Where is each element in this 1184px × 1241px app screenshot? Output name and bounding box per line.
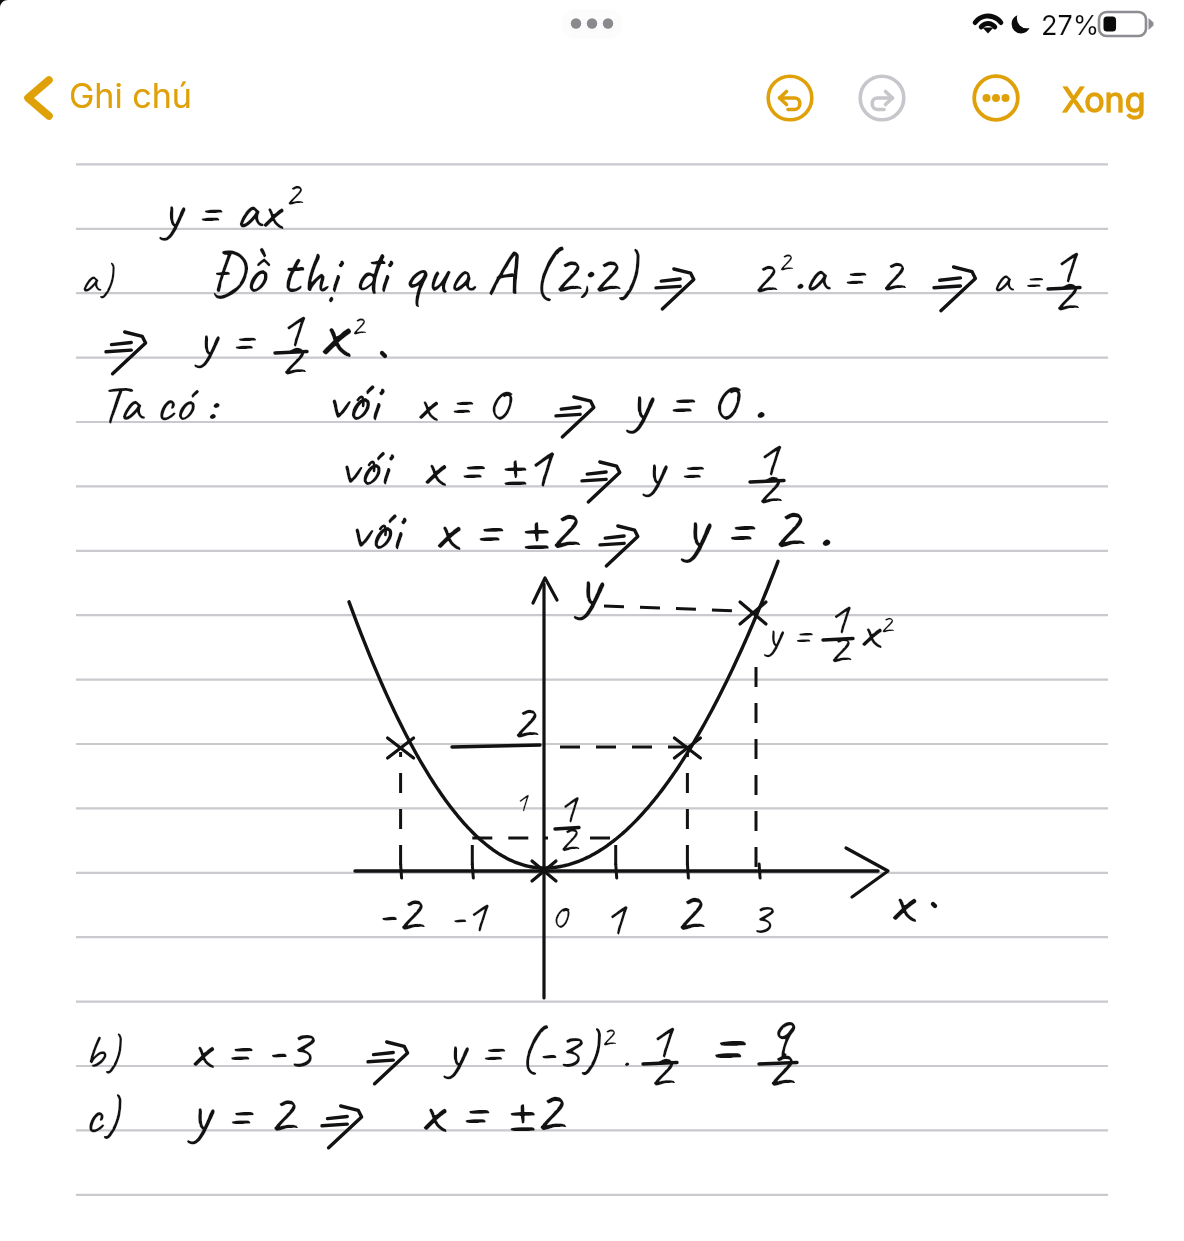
button[interactable]: Redo — [854, 70, 910, 126]
button[interactable]: Xong — [1053, 74, 1153, 124]
staticText: Ghi chú — [69, 75, 192, 116]
button[interactable]: Undo — [762, 70, 818, 126]
button[interactable]: Ghi chú — [20, 70, 192, 130]
staticText: 27% — [1041, 9, 1100, 42]
staticText: Xong — [1062, 79, 1146, 120]
button[interactable]: More options — [968, 70, 1024, 126]
